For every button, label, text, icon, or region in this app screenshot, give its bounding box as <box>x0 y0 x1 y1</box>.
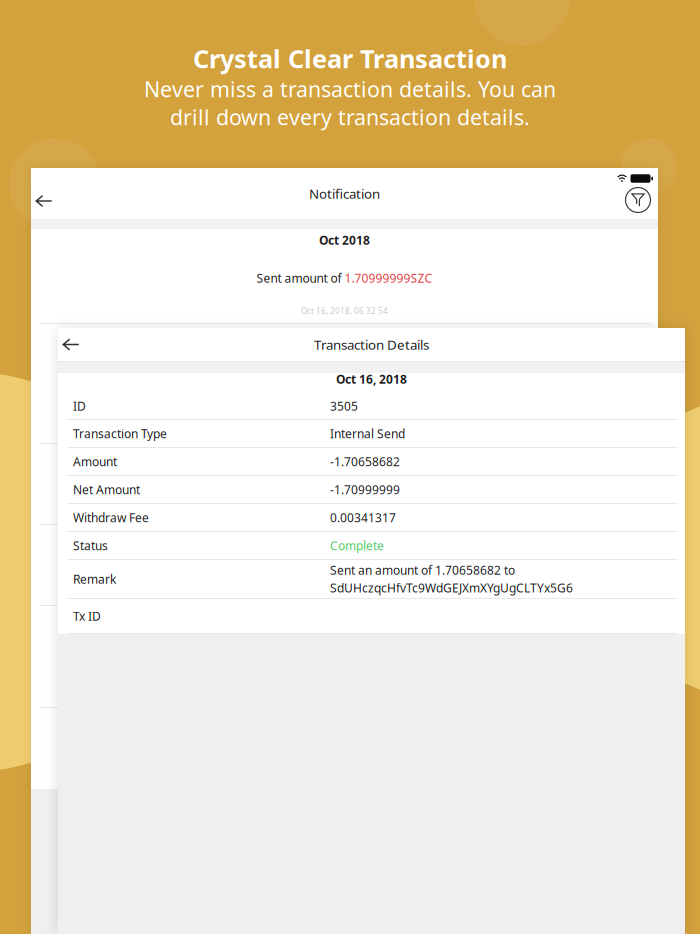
staticText: Complete <box>330 537 384 553</box>
staticText: Oct 16, 2018 <box>336 371 407 387</box>
button[interactable]: Back <box>24 181 64 221</box>
staticText: Never miss a transaction details. You ca… <box>144 75 556 103</box>
staticText: ID <box>73 398 86 414</box>
staticText: Sent an amount of 1.70658682 to <box>330 562 515 578</box>
staticText: Oct 2018 <box>319 232 370 248</box>
staticText: Remark <box>73 571 116 587</box>
staticText: Crystal Clear Transaction <box>193 42 507 75</box>
staticText: Transaction Details <box>314 336 429 353</box>
staticText: Internal Send <box>330 425 405 441</box>
staticText: Transaction Type <box>73 425 167 441</box>
staticText: SdUHczqcHfvTc9WdGEJXmXYgUgCLTYx5G6 <box>330 580 573 596</box>
staticText: Tx ID <box>73 608 101 624</box>
staticText: Amount <box>73 453 117 469</box>
staticText: Withdraw Fee <box>73 509 149 525</box>
staticText: Status <box>73 537 108 553</box>
staticText: Sent amount of <box>256 270 344 286</box>
staticText: drill down every transaction details. <box>170 103 530 131</box>
button[interactable]: Filter <box>620 184 656 216</box>
button[interactable]: Back <box>51 328 91 361</box>
staticText: -1.70999999 <box>330 481 400 497</box>
staticText: Notification <box>309 185 380 202</box>
staticText: Net Amount <box>73 481 140 497</box>
staticText: 1.70999999SZC <box>344 270 432 286</box>
staticText: -1.70658682 <box>330 453 400 469</box>
staticText: 0.00341317 <box>330 509 396 525</box>
staticText: Oct 16, 2018, 06 32 54 <box>301 306 388 316</box>
staticText: 3505 <box>330 398 358 414</box>
